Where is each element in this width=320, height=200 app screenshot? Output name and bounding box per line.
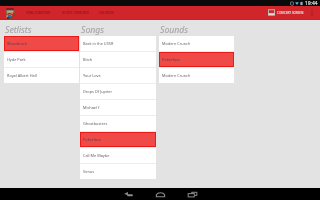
button[interactable]: Home	[144, 188, 176, 200]
staticText: Call Me Maybe	[83, 153, 110, 158]
staticText: CONCERT SCREEN	[277, 11, 304, 15]
staticText: Bitch	[83, 57, 93, 62]
staticText: Modern Crunch	[162, 73, 191, 78]
button[interactable]: Call Me Maybe	[80, 148, 156, 163]
staticText: Pokerface	[162, 57, 180, 62]
button[interactable]: Pokerface	[80, 132, 156, 147]
button[interactable]: SONG COMPOSER	[25, 6, 52, 19]
staticText: Modern Crunch	[162, 41, 191, 46]
staticText: Ghostbusters	[83, 121, 108, 126]
button[interactable]: Michael f	[80, 100, 156, 115]
button[interactable]: Back	[112, 188, 144, 200]
button[interactable]: App icon	[5, 6, 15, 19]
staticText: Songs	[81, 24, 105, 36]
button[interactable]: Modern Crunch	[159, 68, 234, 83]
staticText: Pokerface	[83, 137, 101, 142]
staticText: Michael f	[83, 105, 100, 110]
button[interactable]: Your Love	[80, 68, 156, 83]
staticText: Setlists	[5, 24, 32, 36]
staticText: SETLIST COMPOSER	[62, 11, 89, 15]
button[interactable]: LIVE MODE	[98, 6, 116, 19]
button[interactable]: Venus	[80, 164, 156, 179]
staticText: Your Love	[83, 73, 101, 78]
button[interactable]: More options	[304, 6, 320, 19]
button[interactable]: Royal Albert Hall	[4, 68, 79, 83]
staticText: Back in the USSR	[83, 41, 114, 46]
button[interactable]: Hyde Park	[4, 52, 79, 67]
button[interactable]: Pokerface	[159, 52, 234, 67]
staticText: 19:44	[305, 0, 318, 6]
button[interactable]: Drops Of Jupiter	[80, 84, 156, 99]
button[interactable]: Ghostbusters	[80, 116, 156, 131]
button[interactable]: Bitch	[80, 52, 156, 67]
button[interactable]: Back in the USSR	[80, 36, 156, 51]
button[interactable]: Recent apps	[176, 188, 208, 200]
staticText: Drops Of Jupiter	[83, 89, 113, 94]
button[interactable]: SETLIST COMPOSER	[61, 6, 90, 19]
button[interactable]: Modern Crunch	[159, 36, 234, 51]
staticText: SONG COMPOSER	[26, 11, 51, 15]
staticText: LIVE MODE	[99, 11, 115, 15]
staticText: Sounds	[160, 24, 189, 36]
staticText: Venus	[83, 169, 94, 174]
button[interactable]: Woodstock	[4, 36, 79, 51]
button[interactable]: CONCERT SCREEN	[266, 6, 304, 19]
staticText: Royal Albert Hall	[7, 73, 37, 78]
staticText: Hyde Park	[7, 57, 26, 62]
staticText: Woodstock	[7, 41, 27, 46]
